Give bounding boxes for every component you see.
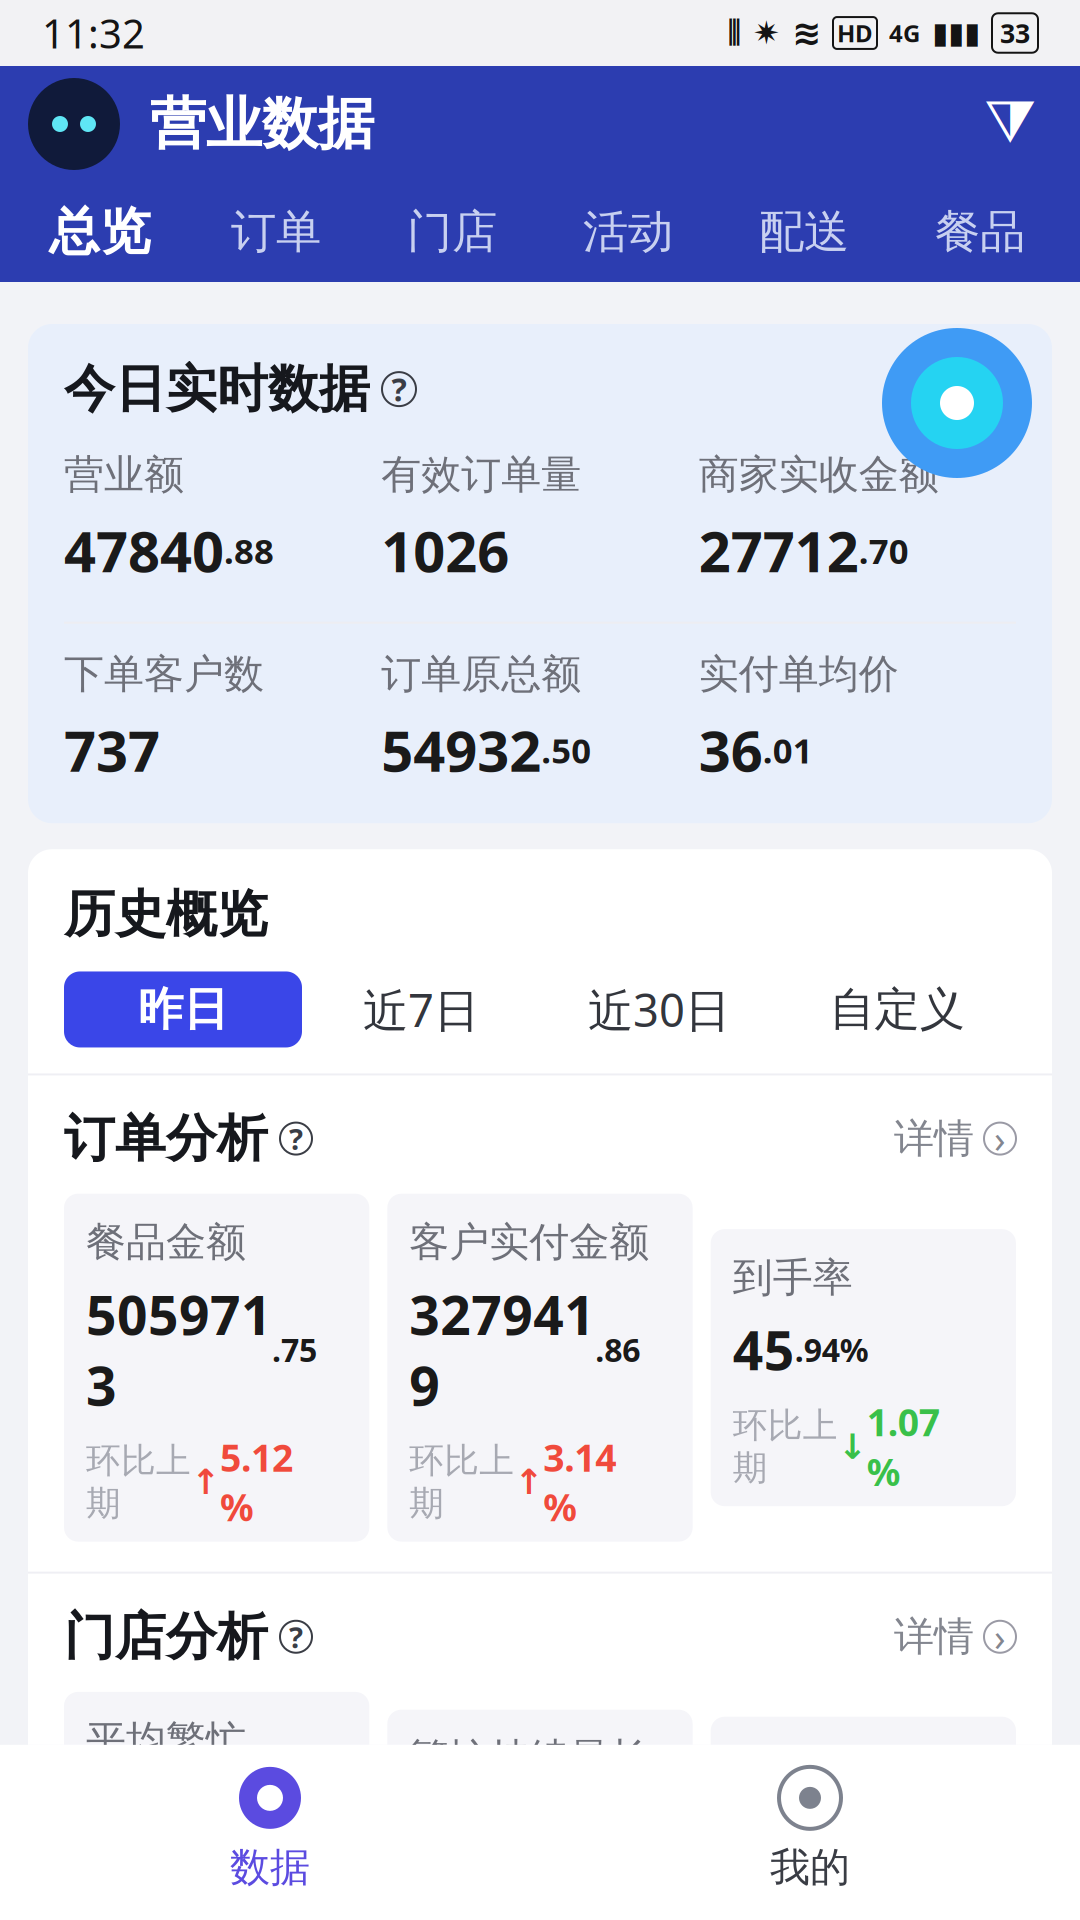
staticText: .01 [763,727,813,773]
staticText: 5.12% [220,1432,293,1532]
staticText: 餐品 [935,204,1025,260]
staticText: 47840 [64,513,224,588]
button[interactable]: 近7日 [302,971,540,1047]
staticText: 繁忙持续最长 [409,1734,649,1783]
button[interactable]: 我的 [540,1767,1080,1892]
staticText: › [994,1114,1006,1163]
staticText: 营业额 [64,450,184,499]
button[interactable]: 门店 [364,182,540,282]
staticText: 活动 [583,204,673,260]
staticText: 1.07% [867,1397,940,1496]
staticText: ≋ [792,13,821,53]
button[interactable]: 订单 [188,182,364,282]
button[interactable]: 餐品 [892,182,1068,282]
staticText: 5059713 [86,1279,272,1420]
staticText: 订单分析 [64,1107,268,1170]
staticText: 近7日 [363,979,479,1040]
staticText: 详情 [894,1114,974,1163]
staticText: ↑ [514,1462,543,1502]
staticText: 订单原总额 [381,650,581,699]
staticText: › [994,1612,1006,1662]
staticText: .00 [764,1817,809,1860]
button[interactable]: 详情 [894,1114,1016,1163]
staticText: 环比上期 [86,1439,191,1525]
staticText: 737 [64,713,160,787]
staticText: 平均营业天数 [733,1741,973,1790]
staticText: 环比上期 [733,1404,838,1489]
staticText: 有效订单量 [381,450,581,499]
staticText: 营业数据 [150,90,374,158]
staticText: ✷ [753,15,780,51]
staticText: 36 [699,713,763,787]
button[interactable]: 总览 [12,182,188,282]
staticText: 门店分析 [64,1606,268,1668]
button[interactable]: 说明 [280,1621,312,1653]
button[interactable]: 自定义 [778,971,1016,1047]
staticText: .94 [795,1328,840,1371]
staticText: % [840,1328,869,1371]
staticText: 总览 [49,201,151,263]
button[interactable]: 配送 [716,182,892,282]
staticText: ▮▮▮ [932,16,980,50]
staticText: ? [289,1119,303,1158]
button[interactable]: 昨日 [64,971,302,1047]
staticText: 近30日 [588,979,730,1040]
button[interactable]: 说明 [280,1123,312,1155]
staticText: 45 [733,1314,795,1385]
staticText: 3.14% [543,1432,616,1532]
staticText: ↑ [191,1462,220,1502]
staticText: 配送 [759,204,849,260]
staticText: ? [289,1617,303,1656]
staticText: ? [391,368,406,410]
staticText: .75 [272,1328,317,1371]
staticText: ⧩ [984,95,1036,153]
button[interactable]: 说明 [382,372,416,406]
staticText: 1026 [381,513,509,588]
staticText: 平均繁忙 [86,1716,246,1765]
staticText: 实付单均价 [699,650,899,699]
button[interactable]: 筛选 [968,82,1052,166]
button[interactable]: 数据 [0,1767,540,1892]
staticText: 20.00% [220,1863,314,1920]
staticText: ⦀ [727,17,741,49]
staticText: 27712 [699,513,859,588]
staticText: 3279419 [409,1279,595,1420]
staticText: 下单客户数 [64,650,264,699]
staticText: 自定义 [829,982,964,1037]
staticText: ↓ [838,1427,867,1466]
staticText: 环比上期 [409,1439,514,1525]
staticText: 11:32 [42,6,145,59]
staticText: 订单 [231,204,321,260]
staticText: 到手率 [733,1253,853,1302]
staticText: 门店 [407,204,497,260]
button[interactable]: 近30日 [540,971,778,1047]
staticText: 商家实收金额 [699,450,939,499]
staticText: 4G [889,17,920,49]
staticText: 54932 [381,713,541,787]
staticText: 数据 [230,1843,310,1892]
button[interactable]: 详情 [894,1612,1016,1661]
staticText: .50 [541,727,591,773]
staticText: 餐品金额 [86,1218,246,1267]
staticText: .88 [224,527,274,573]
staticText: 33 [1000,15,1030,51]
staticText: 详情 [894,1612,974,1661]
button[interactable]: 活动 [540,182,716,282]
staticText: 客户实付金额 [409,1218,649,1267]
